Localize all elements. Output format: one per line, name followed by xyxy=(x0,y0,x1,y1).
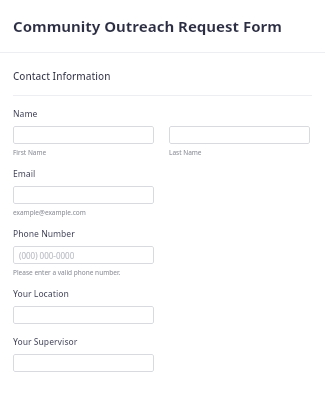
staticText: (000) 000-0000 xyxy=(19,250,75,261)
button[interactable] xyxy=(13,354,154,372)
staticText: Community Outreach Request Form xyxy=(13,16,282,36)
staticText: Your Supervisor xyxy=(13,336,78,348)
staticText: Contact Information xyxy=(13,69,111,83)
staticText: Please enter a valid phone number. xyxy=(13,268,121,277)
staticText: Email xyxy=(13,168,36,180)
staticText: Name xyxy=(13,108,38,120)
button[interactable] xyxy=(13,186,154,204)
button[interactable] xyxy=(13,306,154,324)
staticText: Last Name xyxy=(169,148,202,157)
staticText: example@example.com xyxy=(13,208,86,217)
staticText: Your Location xyxy=(13,288,69,300)
staticText: First Name xyxy=(13,148,47,157)
button[interactable] xyxy=(13,126,154,144)
button[interactable]: (000) 000-0000 xyxy=(13,246,154,264)
button[interactable] xyxy=(169,126,310,144)
staticText: Phone Number xyxy=(13,228,75,240)
